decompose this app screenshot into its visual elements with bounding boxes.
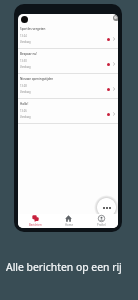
staticText: Home <box>65 223 73 227</box>
button[interactable]: Bespaar nu! <box>18 49 118 73</box>
staticText: Profiel <box>97 223 106 227</box>
staticText: Sportles vergeten <box>20 27 46 31</box>
staticText: 13:26 <box>20 109 27 113</box>
staticText: Vandaag <box>20 90 31 94</box>
staticText: Vandaag <box>20 40 31 44</box>
button[interactable] <box>97 198 116 217</box>
staticText: Alle berichten op een rij <box>6 260 122 274</box>
staticText: Bespaar nu! <box>20 52 38 56</box>
staticText: Nieuwe openingstijden <box>20 77 54 81</box>
staticText: Vandaag <box>20 115 31 119</box>
staticText: 13:28 <box>20 84 27 88</box>
staticText: Hallo! <box>20 102 29 106</box>
button[interactable]: Home <box>52 215 85 227</box>
button[interactable]: Hallo! <box>18 99 118 123</box>
button[interactable]: Profiel <box>85 215 118 227</box>
button[interactable]: Sportles vergeten <box>18 24 118 48</box>
button[interactable]: Nieuwe openingstijden <box>18 74 118 98</box>
staticText: Vandaag <box>20 65 31 69</box>
staticText: Berichten <box>29 223 42 227</box>
button[interactable]: Berichten <box>18 215 52 227</box>
staticText: 13:24 <box>20 34 27 38</box>
staticText: 13:30 <box>20 59 27 63</box>
